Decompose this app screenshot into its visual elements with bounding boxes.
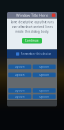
staticText: Option <box>39 89 49 92</box>
staticText: Remember this choice <box>21 52 52 56</box>
staticText: over a few short centred lines <box>11 25 52 29</box>
staticText: Option <box>39 95 49 98</box>
button[interactable]: Option <box>33 73 56 77</box>
button[interactable]: Option <box>33 94 56 99</box>
staticText: Some descriptive copy that runs <box>10 20 53 24</box>
staticText: Continue <box>25 39 39 42</box>
button[interactable]: Option <box>8 64 31 69</box>
button[interactable]: Option <box>33 64 56 69</box>
button[interactable]: Close <box>52 14 55 17</box>
staticText: inside this dialog body. <box>15 30 49 33</box>
staticText: Window Title Here <box>16 13 48 18</box>
staticText: Option <box>39 65 49 68</box>
button[interactable]: Remember this choice <box>7 49 57 58</box>
staticText: Option <box>39 73 49 77</box>
staticText: Option <box>15 89 25 92</box>
staticText: Option <box>15 73 25 77</box>
button[interactable]: Option <box>8 88 31 93</box>
button[interactable]: Option <box>8 94 31 99</box>
button[interactable]: Continue <box>22 38 42 43</box>
staticText: Option <box>15 65 25 68</box>
button[interactable]: Option <box>8 73 31 77</box>
button[interactable]: Option <box>33 88 56 93</box>
staticText: Option <box>15 95 25 98</box>
